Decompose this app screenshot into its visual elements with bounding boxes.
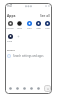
button[interactable]: Home <box>7 84 14 92</box>
other: Updates <box>30 87 33 90</box>
button[interactable]: Explore <box>14 84 21 92</box>
other: Drive <box>17 21 22 26</box>
staticText: Search settings and apps <box>13 54 44 58</box>
staticText: Keep <box>45 27 50 30</box>
staticText: Chrome <box>6 27 14 30</box>
button[interactable]: Apps <box>7 13 50 18</box>
other: Account <box>8 34 13 39</box>
button[interactable]: Create <box>44 85 51 92</box>
other: Keep <box>45 21 50 26</box>
staticText: 9:41 <box>7 4 13 8</box>
button[interactable]: Updates <box>28 84 35 92</box>
other: Chrome <box>8 21 13 26</box>
button[interactable]: Add <box>14 34 22 39</box>
other: Add <box>17 35 20 38</box>
staticText: ● ● ● <box>25 5 32 8</box>
staticText: Docs <box>27 27 32 30</box>
other: Home <box>9 87 12 90</box>
button[interactable]: Account <box>6 34 14 43</box>
staticText: See all <box>40 14 50 18</box>
button[interactable]: Chrome <box>6 21 14 30</box>
other: Meet <box>36 21 41 26</box>
other: Docs <box>27 21 32 26</box>
button[interactable]: Profile <box>35 84 42 92</box>
staticText: Apps <box>7 13 16 18</box>
button[interactable]: Search settings and apps <box>7 54 50 58</box>
button[interactable]: Keep <box>43 21 51 30</box>
button[interactable]: Saved <box>21 84 28 92</box>
staticText: Cloud <box>7 40 13 43</box>
staticText: Recent <box>7 48 15 51</box>
other: Explore <box>16 87 19 90</box>
button[interactable]: Meet <box>34 21 42 30</box>
other: Saved <box>23 87 26 90</box>
button[interactable]: Drive <box>15 21 23 30</box>
other: Profile <box>37 87 40 90</box>
staticText: Meet <box>36 27 41 30</box>
button[interactable]: Docs <box>25 21 33 30</box>
staticText: Drive <box>17 27 22 30</box>
